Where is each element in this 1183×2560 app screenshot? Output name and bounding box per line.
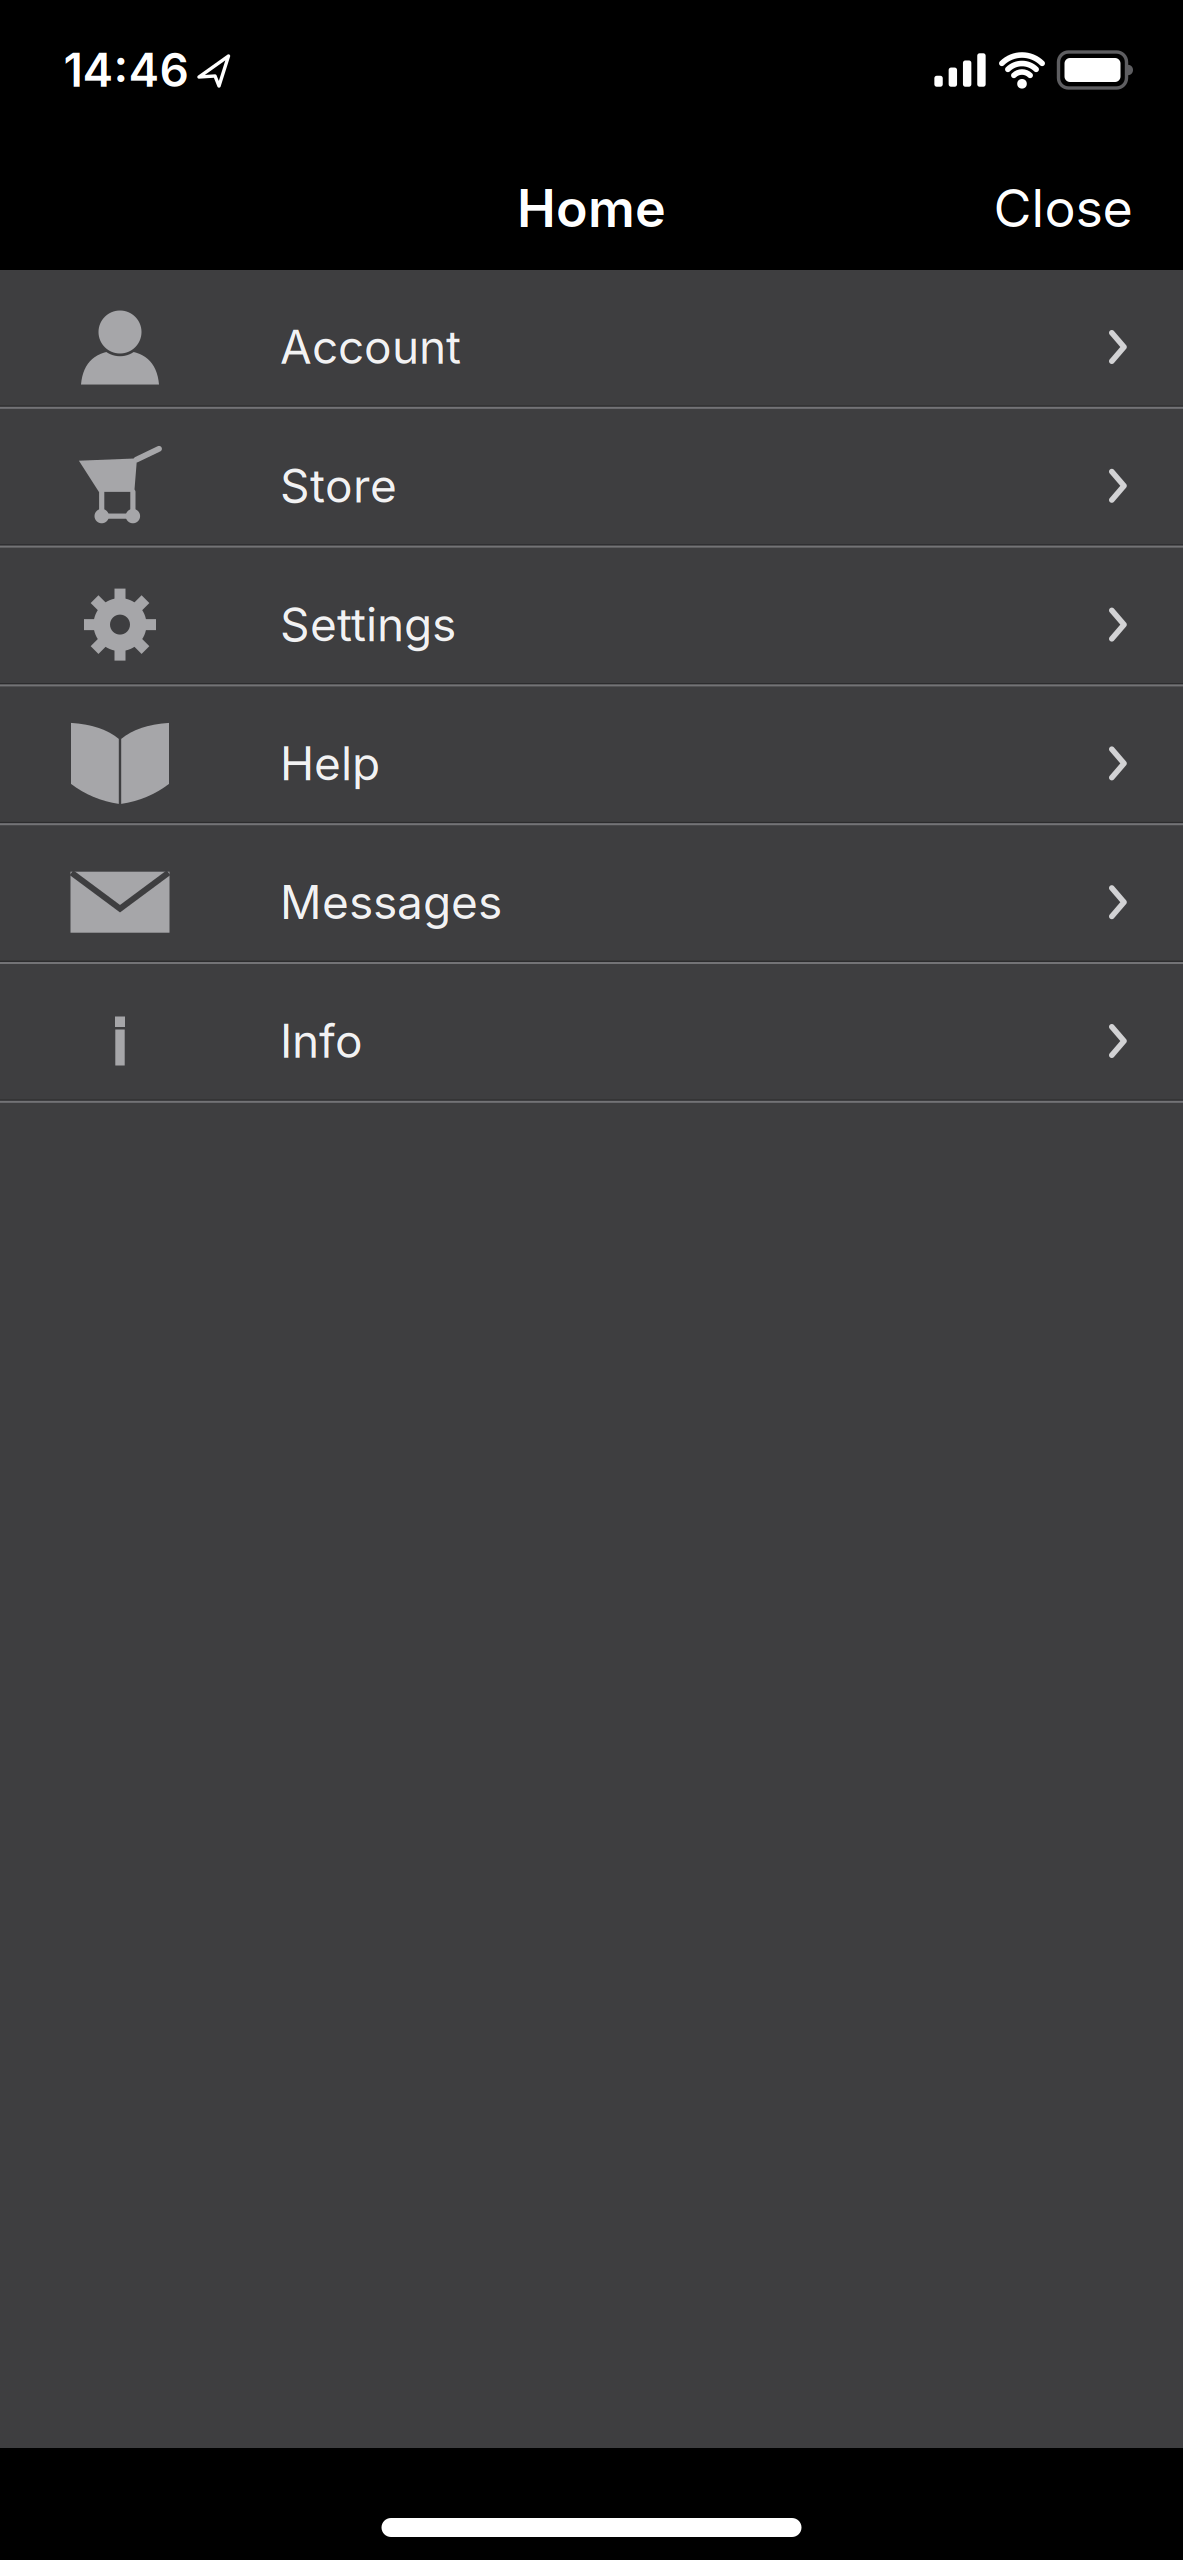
staticText: Store: [280, 459, 397, 513]
button[interactable]: Store: [0, 409, 1183, 548]
staticText: Messages: [280, 875, 502, 929]
staticText: Settings: [280, 597, 456, 652]
staticText: Help: [280, 736, 380, 791]
button[interactable]: Account: [0, 270, 1183, 409]
staticText: Account: [280, 320, 461, 374]
staticText: Info: [280, 1014, 363, 1068]
button[interactable]: Settings: [0, 548, 1183, 686]
button[interactable]: Close: [993, 177, 1132, 239]
staticText: 14:46: [63, 43, 188, 97]
button[interactable]: Messages: [0, 825, 1183, 964]
staticText: Home: [517, 177, 666, 239]
button[interactable]: Help: [0, 686, 1183, 825]
button[interactable]: Info: [0, 964, 1183, 1103]
staticText: Close: [993, 177, 1132, 239]
